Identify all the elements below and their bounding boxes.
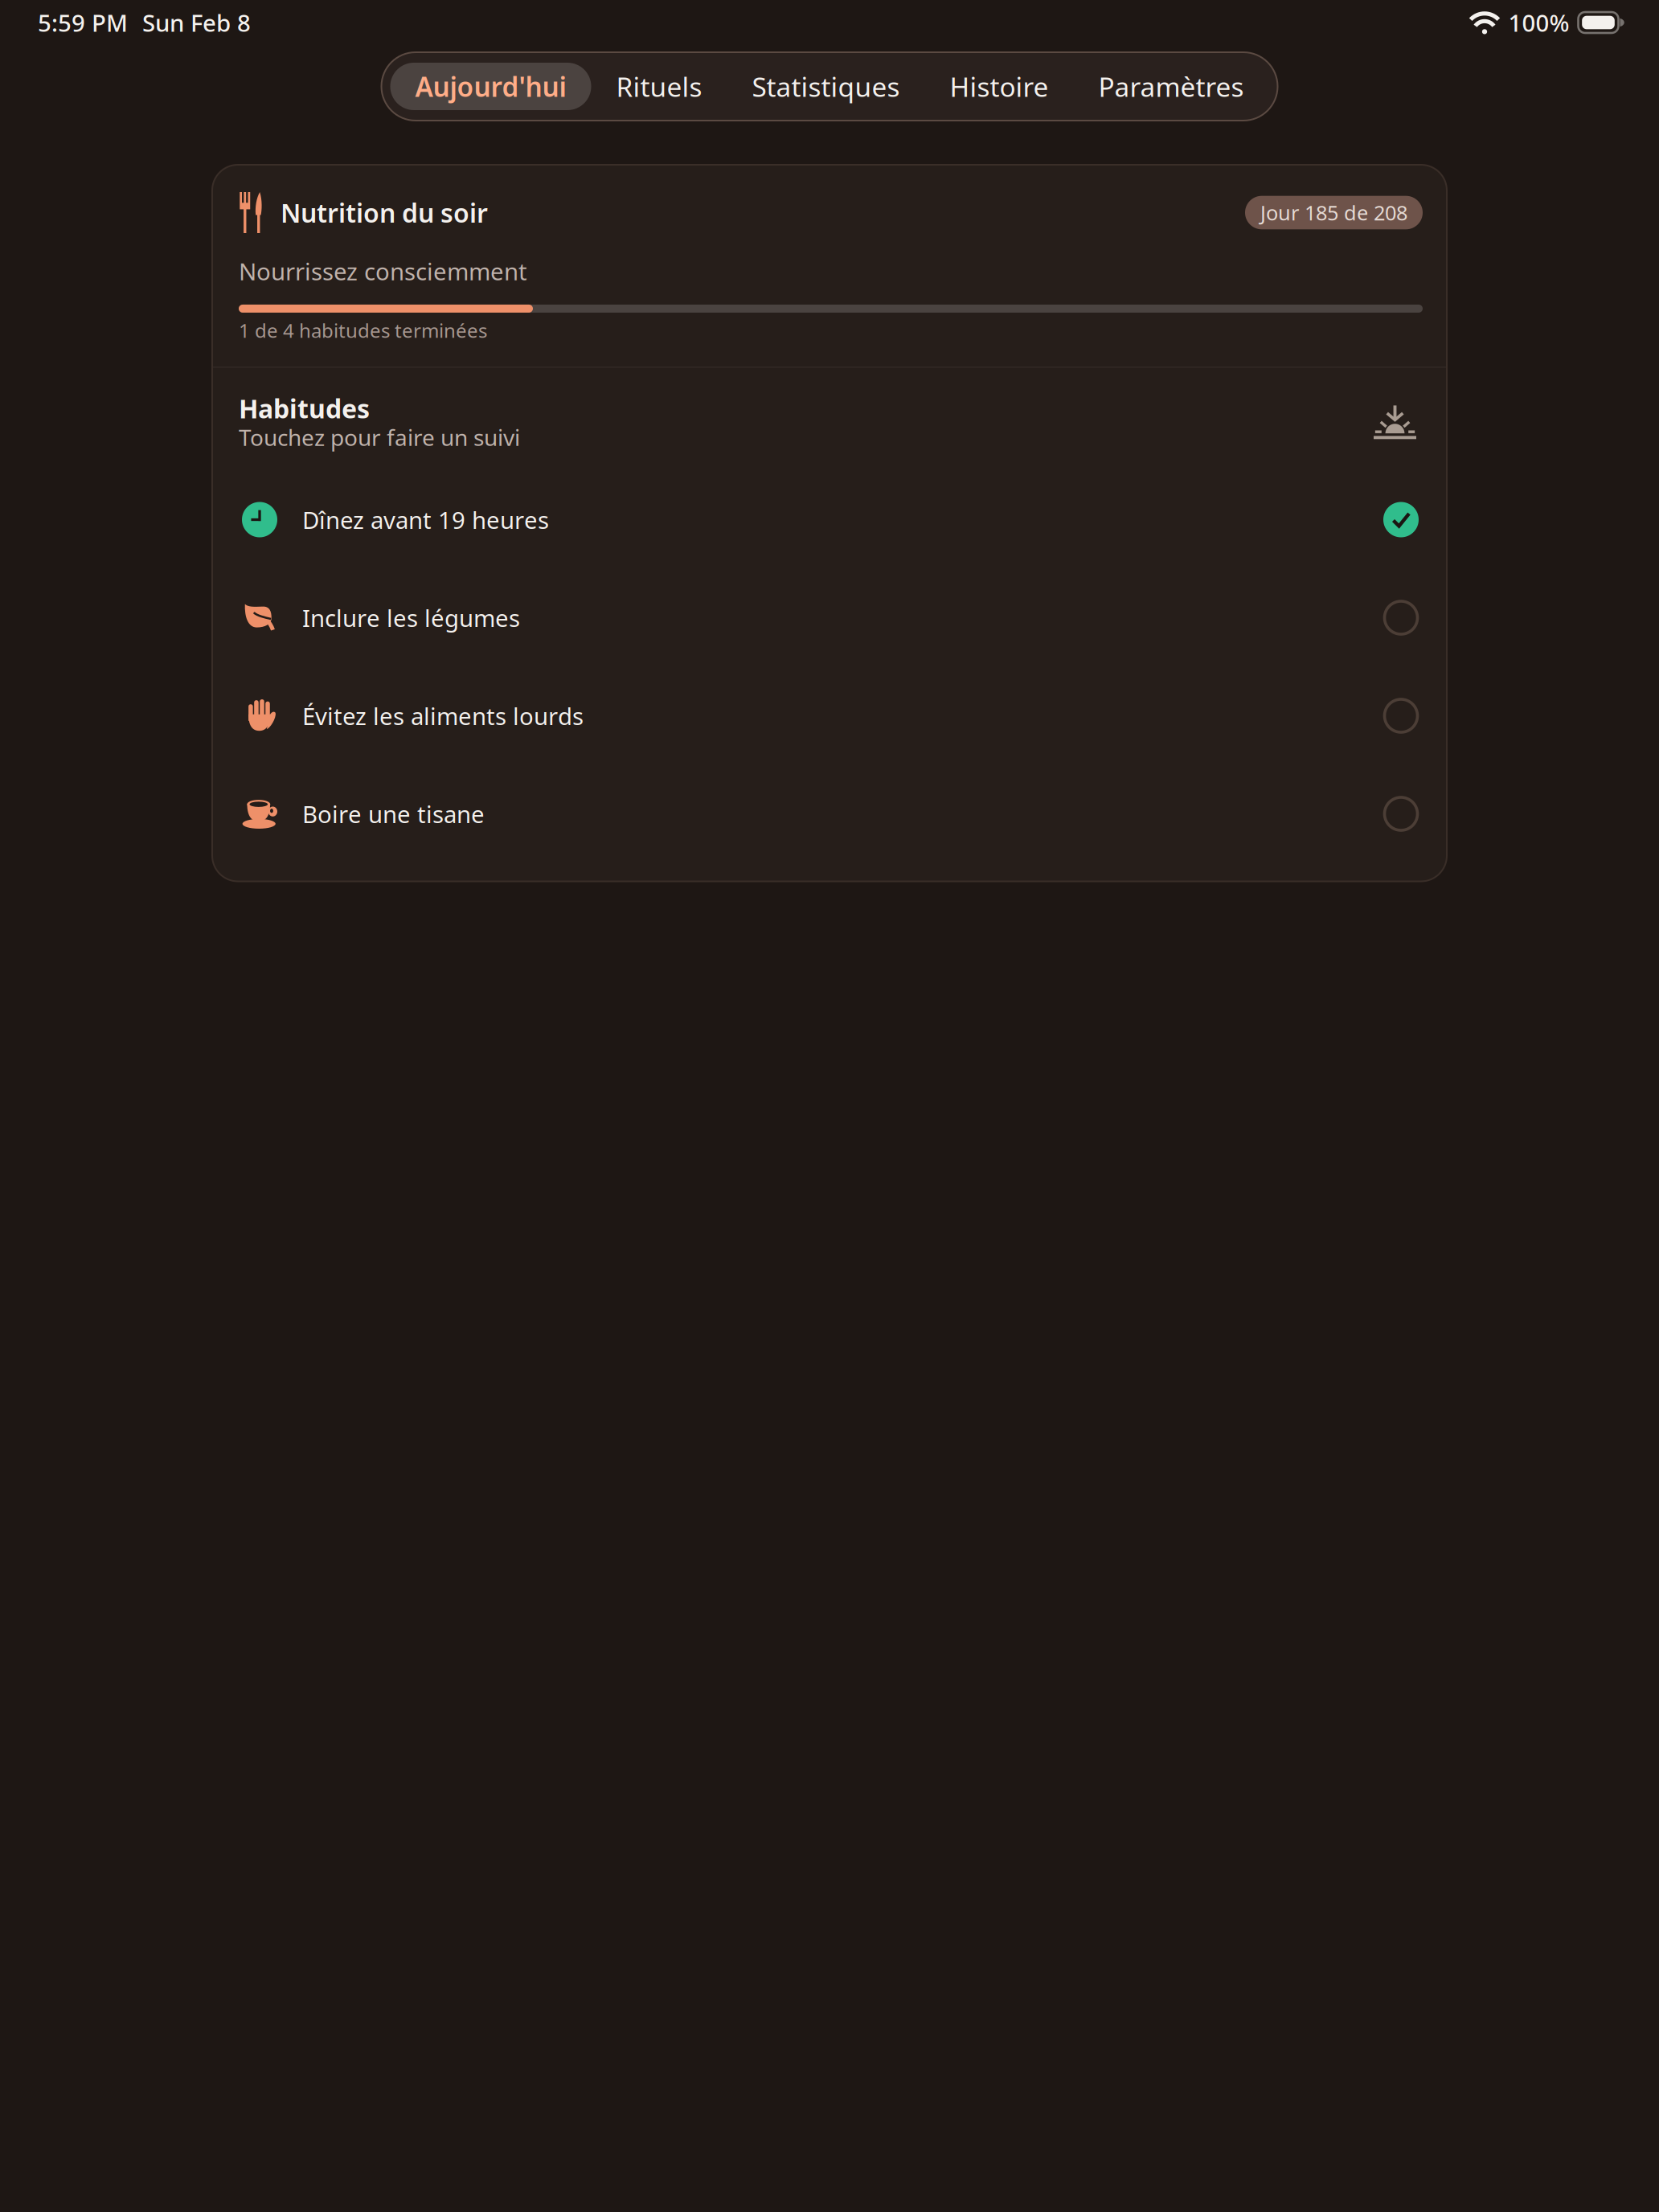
staticText: Nutrition du soir bbox=[281, 196, 488, 230]
staticText: Dînez avant 19 heures bbox=[302, 504, 549, 535]
staticText: Aujourd'hui bbox=[415, 69, 566, 104]
staticText: Boire une tisane bbox=[302, 798, 485, 829]
button[interactable]: Boire une tisane bbox=[212, 765, 1447, 863]
staticText: Statistiques bbox=[752, 69, 900, 104]
staticText: Paramètres bbox=[1098, 69, 1244, 104]
staticText: Habitudes bbox=[239, 391, 370, 425]
staticText: Touchez pour faire un suivi bbox=[239, 422, 520, 452]
staticText: 100% bbox=[1508, 7, 1569, 38]
staticText: 5:59 PM bbox=[38, 7, 128, 38]
button[interactable]: Rituels bbox=[591, 63, 727, 110]
button[interactable]: Dînez avant 19 heures bbox=[212, 471, 1447, 569]
button[interactable]: Statistiques bbox=[727, 63, 925, 110]
button[interactable]: Inclure les légumes bbox=[212, 569, 1447, 667]
staticText: Histoire bbox=[950, 69, 1049, 104]
staticText: Jour 185 de 208 bbox=[1260, 199, 1407, 226]
staticText: Évitez les aliments lourds bbox=[302, 700, 584, 731]
staticText: Nourrissez consciemment bbox=[239, 256, 527, 287]
staticText: Sun Feb 8 bbox=[142, 7, 251, 38]
staticText: Inclure les légumes bbox=[302, 602, 520, 633]
button[interactable]: Paramètres bbox=[1073, 63, 1269, 110]
staticText: 1 de 4 habitudes terminées bbox=[239, 317, 487, 343]
button[interactable]: Histoire bbox=[925, 63, 1073, 110]
button[interactable]: Aujourd'hui bbox=[390, 63, 591, 110]
staticText: Rituels bbox=[616, 69, 702, 104]
button[interactable]: Évitez les aliments lourds bbox=[212, 667, 1447, 765]
